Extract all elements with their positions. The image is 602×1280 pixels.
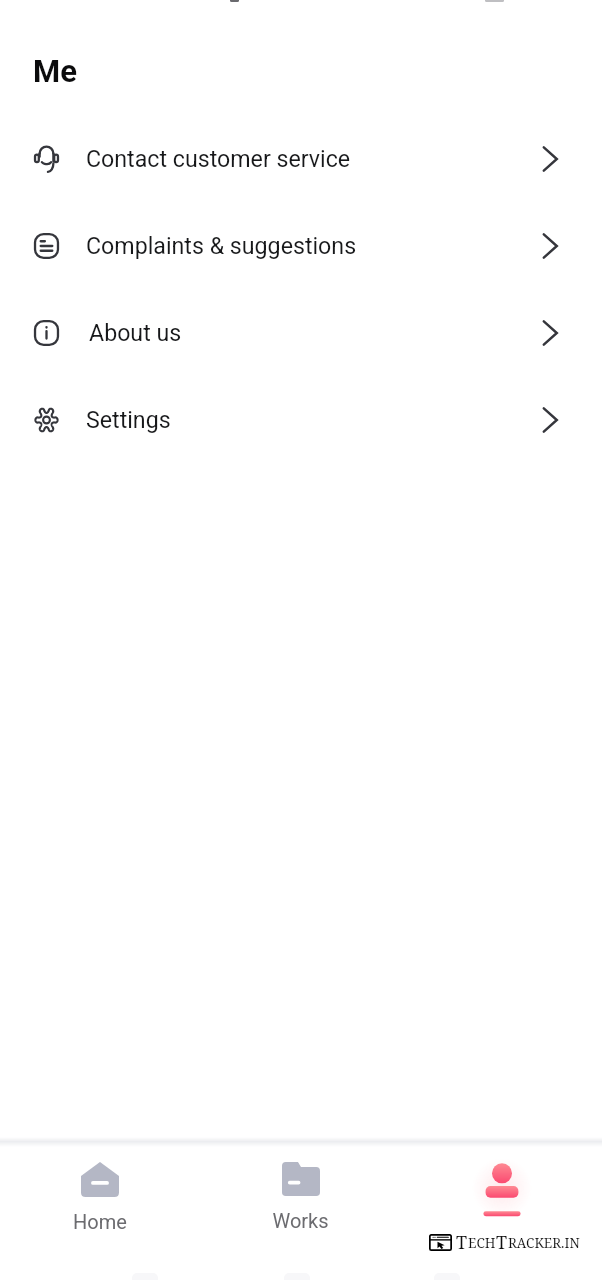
staticText: ECH <box>468 1234 496 1252</box>
staticText: Contact customer service <box>86 145 351 172</box>
staticText: T <box>456 1230 468 1255</box>
staticText: Me <box>33 53 77 89</box>
button[interactable]: Complaints & suggestions <box>0 202 602 289</box>
staticText: T <box>496 1230 508 1255</box>
staticText: About us <box>89 319 182 346</box>
staticText: Settings <box>86 406 171 433</box>
button[interactable]: About us <box>0 289 602 376</box>
staticText: Home <box>73 1210 127 1233</box>
staticText: Works <box>272 1209 329 1232</box>
button[interactable]: Contact customer service <box>0 115 602 202</box>
staticText: Complaints & suggestions <box>86 232 357 259</box>
button[interactable]: Works <box>200 1147 401 1232</box>
button[interactable]: Settings <box>0 376 602 463</box>
button[interactable]: Me <box>401 1147 602 1220</box>
staticText: RACKER.IN <box>508 1234 580 1252</box>
button[interactable]: Home <box>0 1147 200 1233</box>
